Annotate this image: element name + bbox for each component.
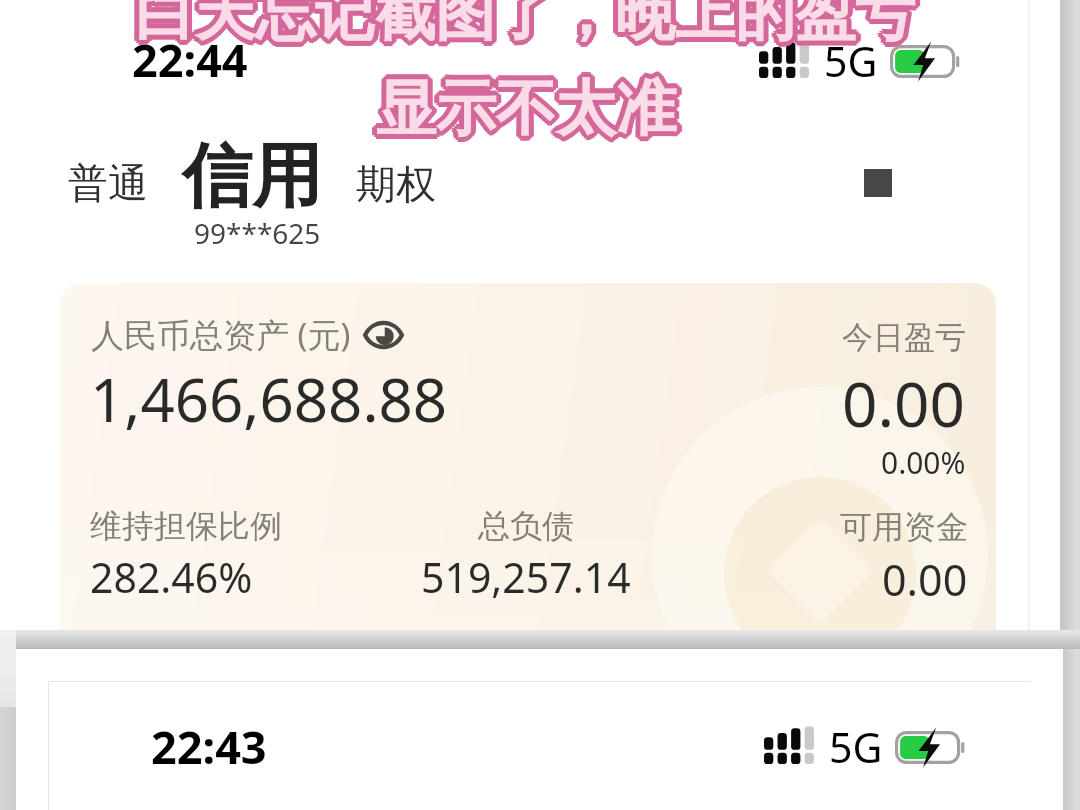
staticText: 显示不太准 <box>379 72 679 148</box>
staticText: 白天忘记截图了，晚上的盈亏 <box>140 0 920 53</box>
staticText: 白天忘记截图了，晚上的盈亏 <box>134 0 914 49</box>
staticText: 白天忘记截图了，晚上的盈亏 <box>132 0 912 53</box>
staticText: 普通 <box>68 158 148 208</box>
staticText: 白天忘记截图了，晚上的盈亏 <box>136 0 916 51</box>
staticText: 白天忘记截图了，晚上的盈亏 <box>138 0 918 53</box>
staticText: 99***625 <box>194 214 321 252</box>
staticText: 白天忘记截图了，晚上的盈亏 <box>132 0 912 55</box>
staticText: 显示不太准 <box>373 68 673 144</box>
staticText: 白天忘记截图了，晚上的盈亏 <box>130 0 910 53</box>
staticText: 白天忘记截图了，晚上的盈亏 <box>134 0 914 47</box>
staticText: 显示不太准 <box>371 72 671 148</box>
staticText: 0.00% <box>881 442 966 483</box>
staticText: 白天忘记截图了，晚上的盈亏 <box>134 0 914 57</box>
staticText: 显示不太准 <box>381 70 681 146</box>
staticText: 显示不太准 <box>377 76 677 152</box>
staticText: 显示不太准 <box>375 66 675 142</box>
staticText: 白天忘记截图了，晚上的盈亏 <box>130 0 910 51</box>
staticText: 显示不太准 <box>373 72 673 148</box>
staticText: 显示不太准 <box>379 68 679 144</box>
staticText: 0.00 <box>842 361 966 445</box>
staticText: 白天忘记截图了，晚上的盈亏 <box>135 0 915 52</box>
staticText: 显示不太准 <box>375 72 675 148</box>
staticText: 白天忘记截图了，晚上的盈亏 <box>132 0 912 49</box>
staticText: 显示不太准 <box>375 70 675 146</box>
staticText: 白天忘记截图了，晚上的盈亏 <box>136 0 916 53</box>
staticText: 显示不太准 <box>377 66 677 142</box>
staticText: 白天忘记截图了，晚上的盈亏 <box>134 0 914 51</box>
staticText: 人民币总资产 (元) <box>91 312 351 357</box>
staticText: 显示不太准 <box>381 72 681 148</box>
staticText: 22:44 <box>132 29 248 90</box>
staticText: 显示不太准 <box>376 71 676 147</box>
staticText: 0.00 <box>882 550 968 609</box>
button[interactable]: 信用 <box>176 127 328 227</box>
staticText: 白天忘记截图了，晚上的盈亏 <box>136 0 916 47</box>
staticText: 1,466,688.88 <box>90 358 448 440</box>
staticText: 白天忘记截图了，晚上的盈亏 <box>136 0 916 57</box>
staticText: 白天忘记截图了，晚上的盈亏 <box>136 0 916 55</box>
button[interactable]: 期权 <box>350 153 442 215</box>
staticText: 白天忘记截图了，晚上的盈亏 <box>138 0 918 51</box>
staticText: 白天忘记截图了，晚上的盈亏 <box>134 0 914 55</box>
staticText: 5G <box>829 719 883 775</box>
staticText: 维持担保比例 <box>90 506 282 546</box>
staticText: 显示不太准 <box>377 72 677 148</box>
button[interactable]: 普通 <box>62 152 154 214</box>
staticText: 白天忘记截图了，晚上的盈亏 <box>138 0 918 49</box>
staticText: 白天忘记截图了，晚上的盈亏 <box>138 0 918 55</box>
staticText: 信用 <box>182 133 322 221</box>
staticText: 显示不太准 <box>375 74 675 150</box>
staticText: 今日盈亏 <box>842 318 966 357</box>
staticText: 22:43 <box>151 716 267 777</box>
staticText: 显示不太准 <box>371 70 671 146</box>
staticText: 显示不太准 <box>373 74 673 150</box>
staticText: 白天忘记截图了，晚上的盈亏 <box>136 0 916 49</box>
staticText: 可用资金 <box>840 507 968 547</box>
staticText: 282.46% <box>90 549 253 605</box>
button[interactable]: Toggle balance visibility <box>363 320 404 350</box>
staticText: 显示不太准 <box>379 70 679 146</box>
staticText: 显示不太准 <box>375 76 675 152</box>
staticText: 白天忘记截图了，晚上的盈亏 <box>134 0 914 53</box>
staticText: 显示不太准 <box>375 68 675 144</box>
staticText: 白天忘记截图了，晚上的盈亏 <box>140 0 920 51</box>
staticText: 5G <box>824 33 878 89</box>
staticText: 显示不太准 <box>379 74 679 150</box>
staticText: 519,257.14 <box>421 549 631 605</box>
staticText: 期权 <box>356 159 436 209</box>
staticText: 显示不太准 <box>373 70 673 146</box>
staticText: 显示不太准 <box>377 70 677 146</box>
staticText: 白天忘记截图了，晚上的盈亏 <box>132 0 912 51</box>
staticText: 显示不太准 <box>377 74 677 150</box>
staticText: 显示不太准 <box>377 68 677 144</box>
staticText: 总负债 <box>478 506 574 546</box>
